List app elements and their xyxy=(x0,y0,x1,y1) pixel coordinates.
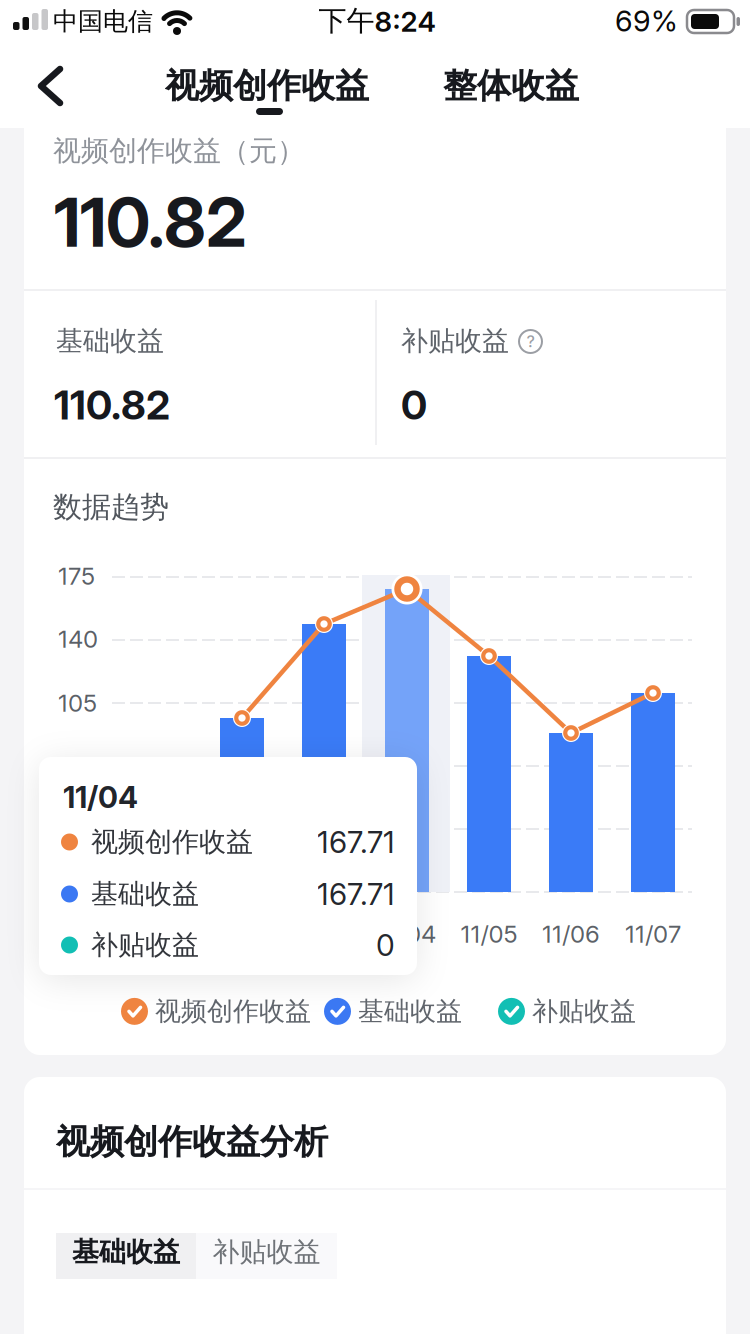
staticText: 基础收益 xyxy=(358,995,462,1028)
staticText: 140 xyxy=(58,624,98,653)
staticText: 105 xyxy=(58,688,97,717)
staticText: 视频创作收益 xyxy=(155,995,311,1028)
staticText: 167.71 xyxy=(317,876,395,912)
staticText: 视频创作收益（元） xyxy=(53,133,305,169)
staticText: 补贴收益 xyxy=(91,928,199,962)
button[interactable]: 视频创作收益 xyxy=(165,52,375,120)
button[interactable]: 补贴收益说明 xyxy=(519,330,542,353)
staticText: 0 xyxy=(401,381,427,429)
staticText: 基础收益 xyxy=(72,1235,180,1269)
staticText: 110.82 xyxy=(54,181,247,263)
staticText: 69% xyxy=(615,3,678,39)
staticText: 167.71 xyxy=(317,824,395,860)
button[interactable]: Back xyxy=(38,67,64,105)
button[interactable]: 补贴收益 xyxy=(498,995,636,1028)
staticText: 11/07 xyxy=(625,919,681,948)
staticText: 整体收益 xyxy=(443,65,579,107)
staticText: 110.82 xyxy=(54,381,170,429)
staticText: ? xyxy=(526,332,534,351)
button[interactable]: 基础收益 xyxy=(324,995,462,1028)
staticText: 下午8:24 xyxy=(318,3,435,39)
button[interactable]: 补贴收益 xyxy=(196,1233,337,1279)
button[interactable]: 视频创作收益 xyxy=(121,995,311,1028)
staticText: 0 xyxy=(376,927,395,963)
staticText: 11/04 xyxy=(378,919,436,948)
staticText: 中国电信 xyxy=(53,6,153,37)
staticText: 视频创作收益 xyxy=(91,825,253,859)
staticText: 补贴收益 xyxy=(532,995,636,1028)
staticText: 视频创作收益 xyxy=(165,65,369,107)
staticText: 11/05 xyxy=(460,919,517,948)
staticText: 视频创作收益分析 xyxy=(56,1121,328,1163)
staticText: 11/04 xyxy=(63,779,138,815)
staticText: 11/06 xyxy=(542,919,600,948)
button[interactable]: 基础收益 xyxy=(56,1233,196,1279)
staticText: 175 xyxy=(58,561,95,590)
button[interactable]: 整体收益 xyxy=(443,52,593,120)
staticText: 补贴收益 xyxy=(212,1235,320,1269)
staticText: 数据趋势 xyxy=(53,489,169,525)
staticText: 基础收益 xyxy=(91,877,199,911)
staticText: 补贴收益 xyxy=(401,324,509,358)
staticText: 基础收益 xyxy=(56,324,164,358)
